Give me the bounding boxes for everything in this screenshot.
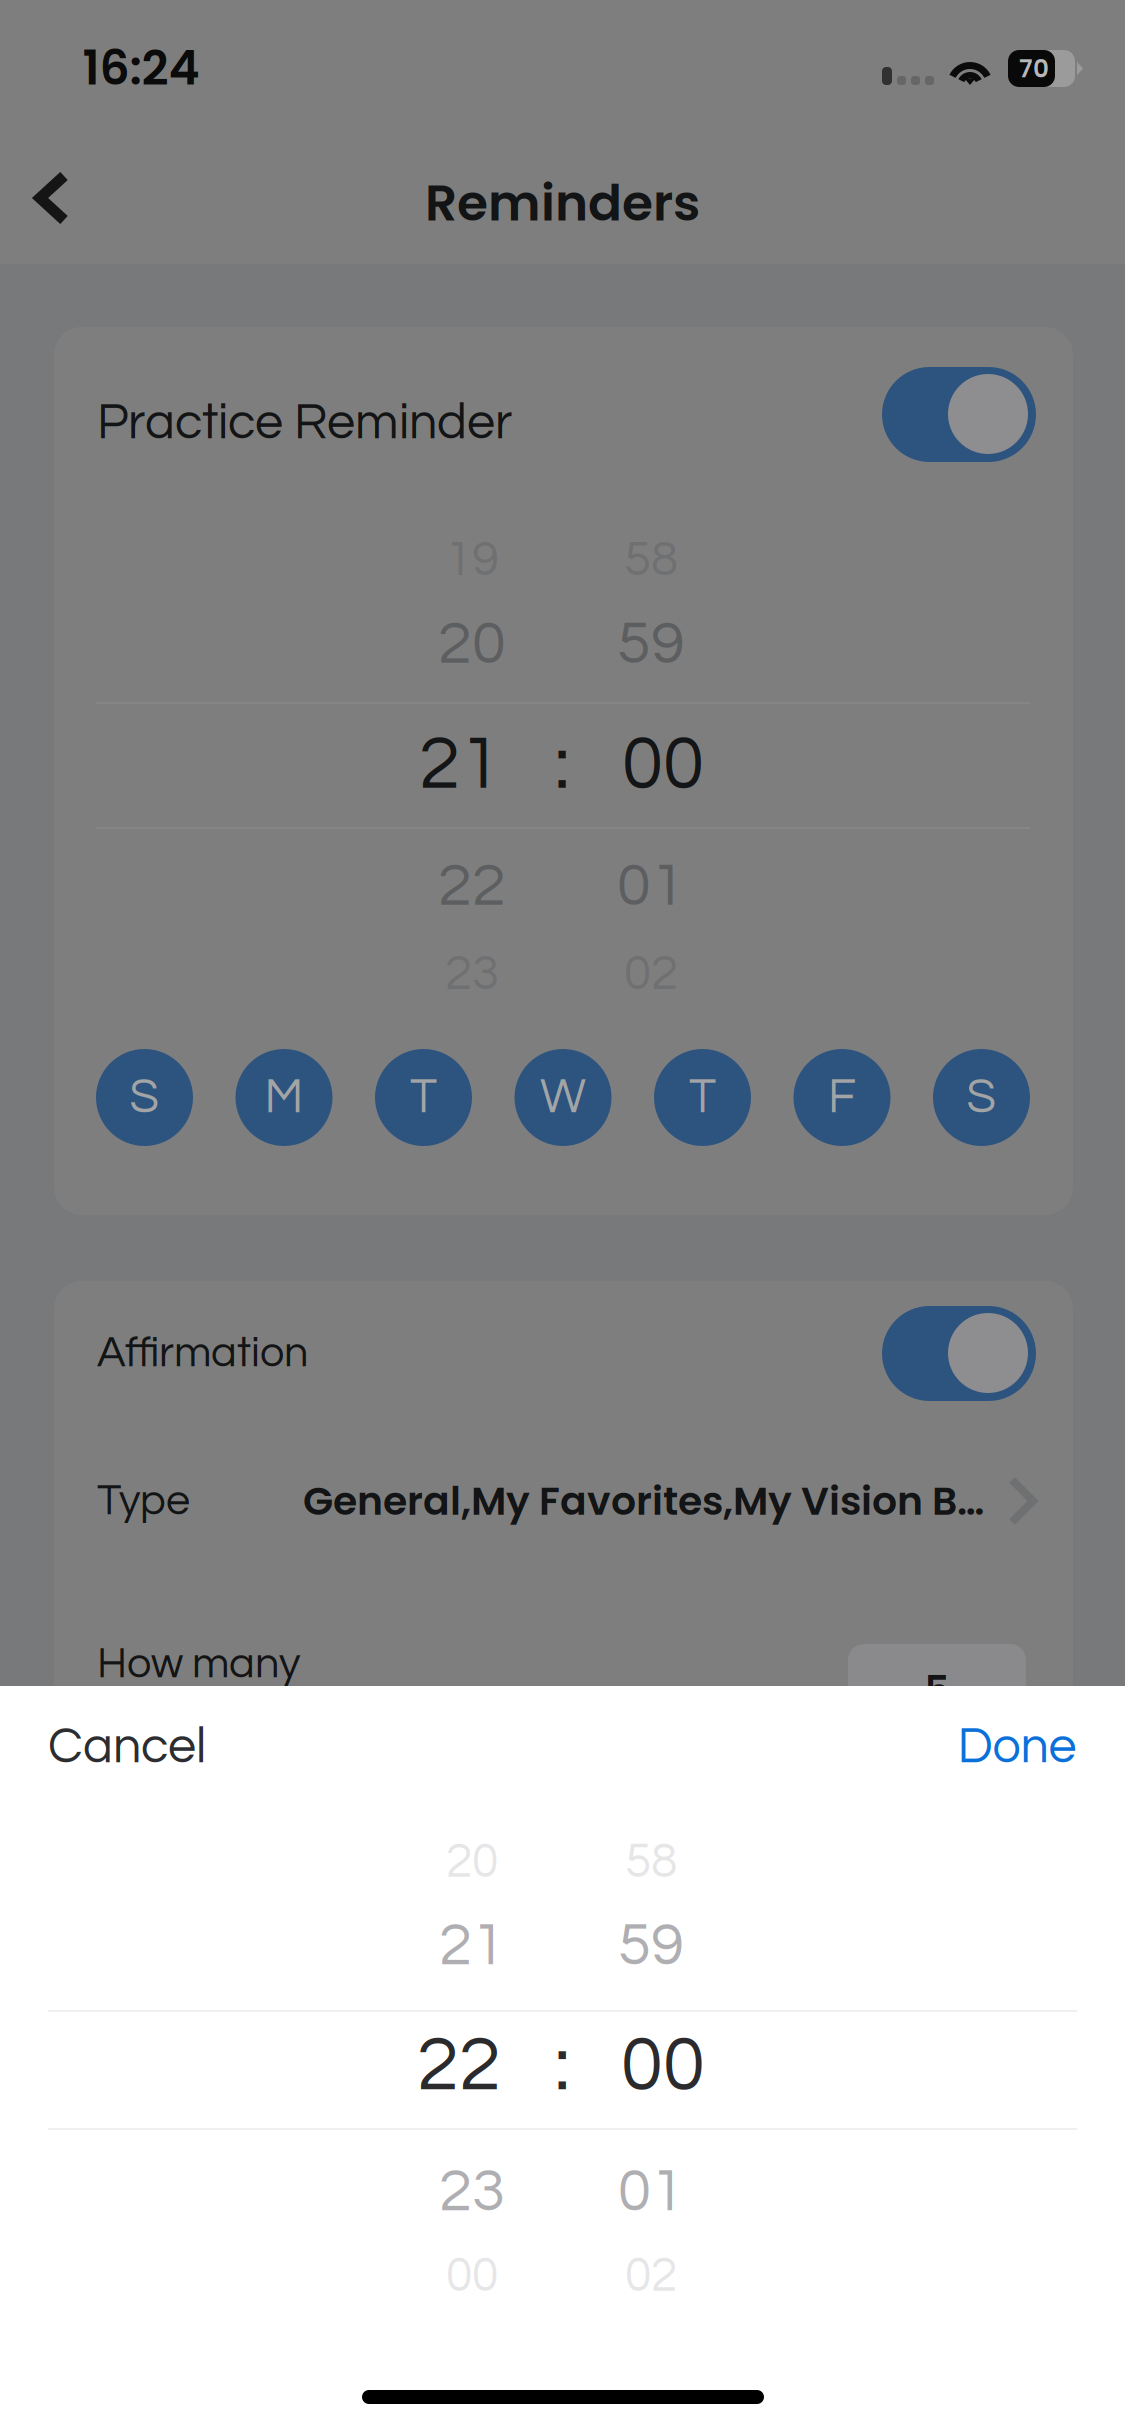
staticText: 5	[924, 1662, 949, 1718]
button[interactable]: F	[793, 1049, 890, 1146]
staticText: T	[689, 1073, 716, 1122]
button[interactable]: Type	[54, 1436, 1073, 1566]
staticText: 02	[625, 2251, 677, 2301]
staticText: 19	[445, 535, 499, 585]
button[interactable]: Cancel	[17, 1694, 237, 1800]
staticText: S	[966, 1073, 996, 1122]
staticText: 59	[617, 612, 685, 676]
staticText: 58	[625, 1837, 677, 1887]
staticText: Done	[957, 1721, 1076, 1773]
staticText: 20	[438, 612, 506, 676]
staticText: 01	[617, 854, 685, 918]
staticText: 70	[1019, 51, 1049, 86]
staticText: 22	[417, 2027, 501, 2105]
staticText: 16:24	[82, 35, 199, 101]
staticText: 22	[438, 854, 506, 918]
staticText: 00	[446, 2251, 498, 2301]
staticText: Type	[97, 1479, 190, 1523]
staticText: 00	[622, 726, 704, 803]
button[interactable]: T	[375, 1049, 472, 1146]
staticText: 21	[419, 726, 501, 803]
staticText: 00	[621, 2027, 705, 2105]
staticText: Practice Reminder	[97, 397, 512, 449]
staticText: General,My Favorites,My Vision B…	[303, 1473, 984, 1529]
button[interactable]: Toggle	[882, 367, 1036, 462]
button[interactable]: Done	[907, 1694, 1125, 1800]
staticText: F	[828, 1073, 856, 1122]
staticText: S	[129, 1073, 159, 1122]
button[interactable]: Toggle	[882, 1306, 1036, 1401]
staticText: 20	[446, 1837, 498, 1887]
staticText: W	[540, 1073, 586, 1122]
staticText: M	[264, 1073, 303, 1122]
staticText: Cancel	[48, 1721, 206, 1773]
staticText: 23	[445, 949, 499, 999]
staticText: 01	[618, 2161, 684, 2223]
staticText: 23	[439, 2161, 505, 2223]
staticText: How many	[97, 1642, 300, 1686]
button[interactable]: S	[933, 1049, 1030, 1146]
staticText: Affirmation	[97, 1331, 308, 1375]
button[interactable]: W	[514, 1049, 611, 1146]
staticText: 21	[439, 1915, 505, 1977]
button[interactable]: M	[235, 1049, 332, 1146]
staticText: :	[554, 2027, 569, 2105]
staticText: 59	[618, 1915, 684, 1977]
button[interactable]: Back	[11, 146, 115, 250]
button[interactable]: S	[96, 1049, 193, 1146]
staticText: 58	[624, 535, 678, 585]
staticText: 02	[624, 949, 678, 999]
button[interactable]: T	[654, 1049, 751, 1146]
staticText: Reminders	[425, 168, 700, 238]
staticText: T	[410, 1073, 437, 1122]
staticText: :	[554, 726, 569, 803]
